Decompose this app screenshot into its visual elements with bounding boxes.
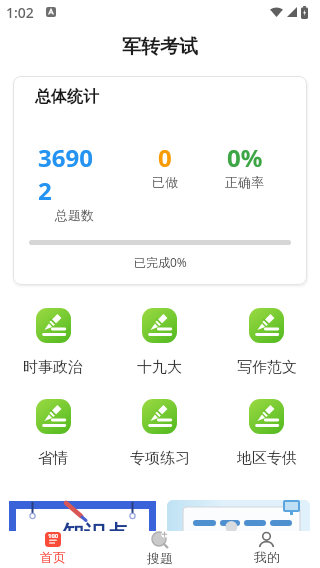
staticText: 100 <box>48 532 59 540</box>
staticText: 十九大 <box>137 358 182 377</box>
staticText: 首页 <box>40 549 66 565</box>
staticText: 0 <box>158 141 172 174</box>
staticText: 1:02 <box>6 3 34 22</box>
staticText: 军转考试 <box>122 35 198 59</box>
button[interactable]: 十九大 <box>106 308 213 377</box>
staticText: 已做 <box>152 174 178 190</box>
button[interactable]: 专项练习 <box>106 399 213 468</box>
staticText: 0% <box>227 141 263 174</box>
button[interactable]: 时事政治 <box>0 308 106 377</box>
staticText: 我的 <box>254 549 280 565</box>
staticText: 写作范文 <box>237 358 297 377</box>
button[interactable]: 100 <box>0 531 106 568</box>
staticText: 已完成0% <box>134 254 187 270</box>
button[interactable]: 省情 <box>0 399 106 468</box>
button[interactable]: 写作范文 <box>213 308 320 377</box>
staticText: 总体统计 <box>35 87 99 107</box>
staticText: 36902 <box>38 141 96 207</box>
staticText: 省情 <box>38 449 68 468</box>
staticText: 搜题 <box>147 550 173 566</box>
button[interactable]: 搜题 <box>106 531 213 568</box>
button[interactable]: 地区专供 <box>213 399 320 468</box>
staticText: 时事政治 <box>23 358 83 377</box>
button[interactable]: 知识点 <box>9 489 156 538</box>
staticText: 总题数 <box>55 207 94 223</box>
button[interactable]: 我的 <box>213 531 320 568</box>
staticText: 专项练习 <box>130 449 190 468</box>
staticText: 正确率 <box>225 174 264 190</box>
staticText: 地区专供 <box>237 449 297 468</box>
staticText: 知识点 <box>62 520 128 538</box>
button[interactable] <box>167 500 310 538</box>
